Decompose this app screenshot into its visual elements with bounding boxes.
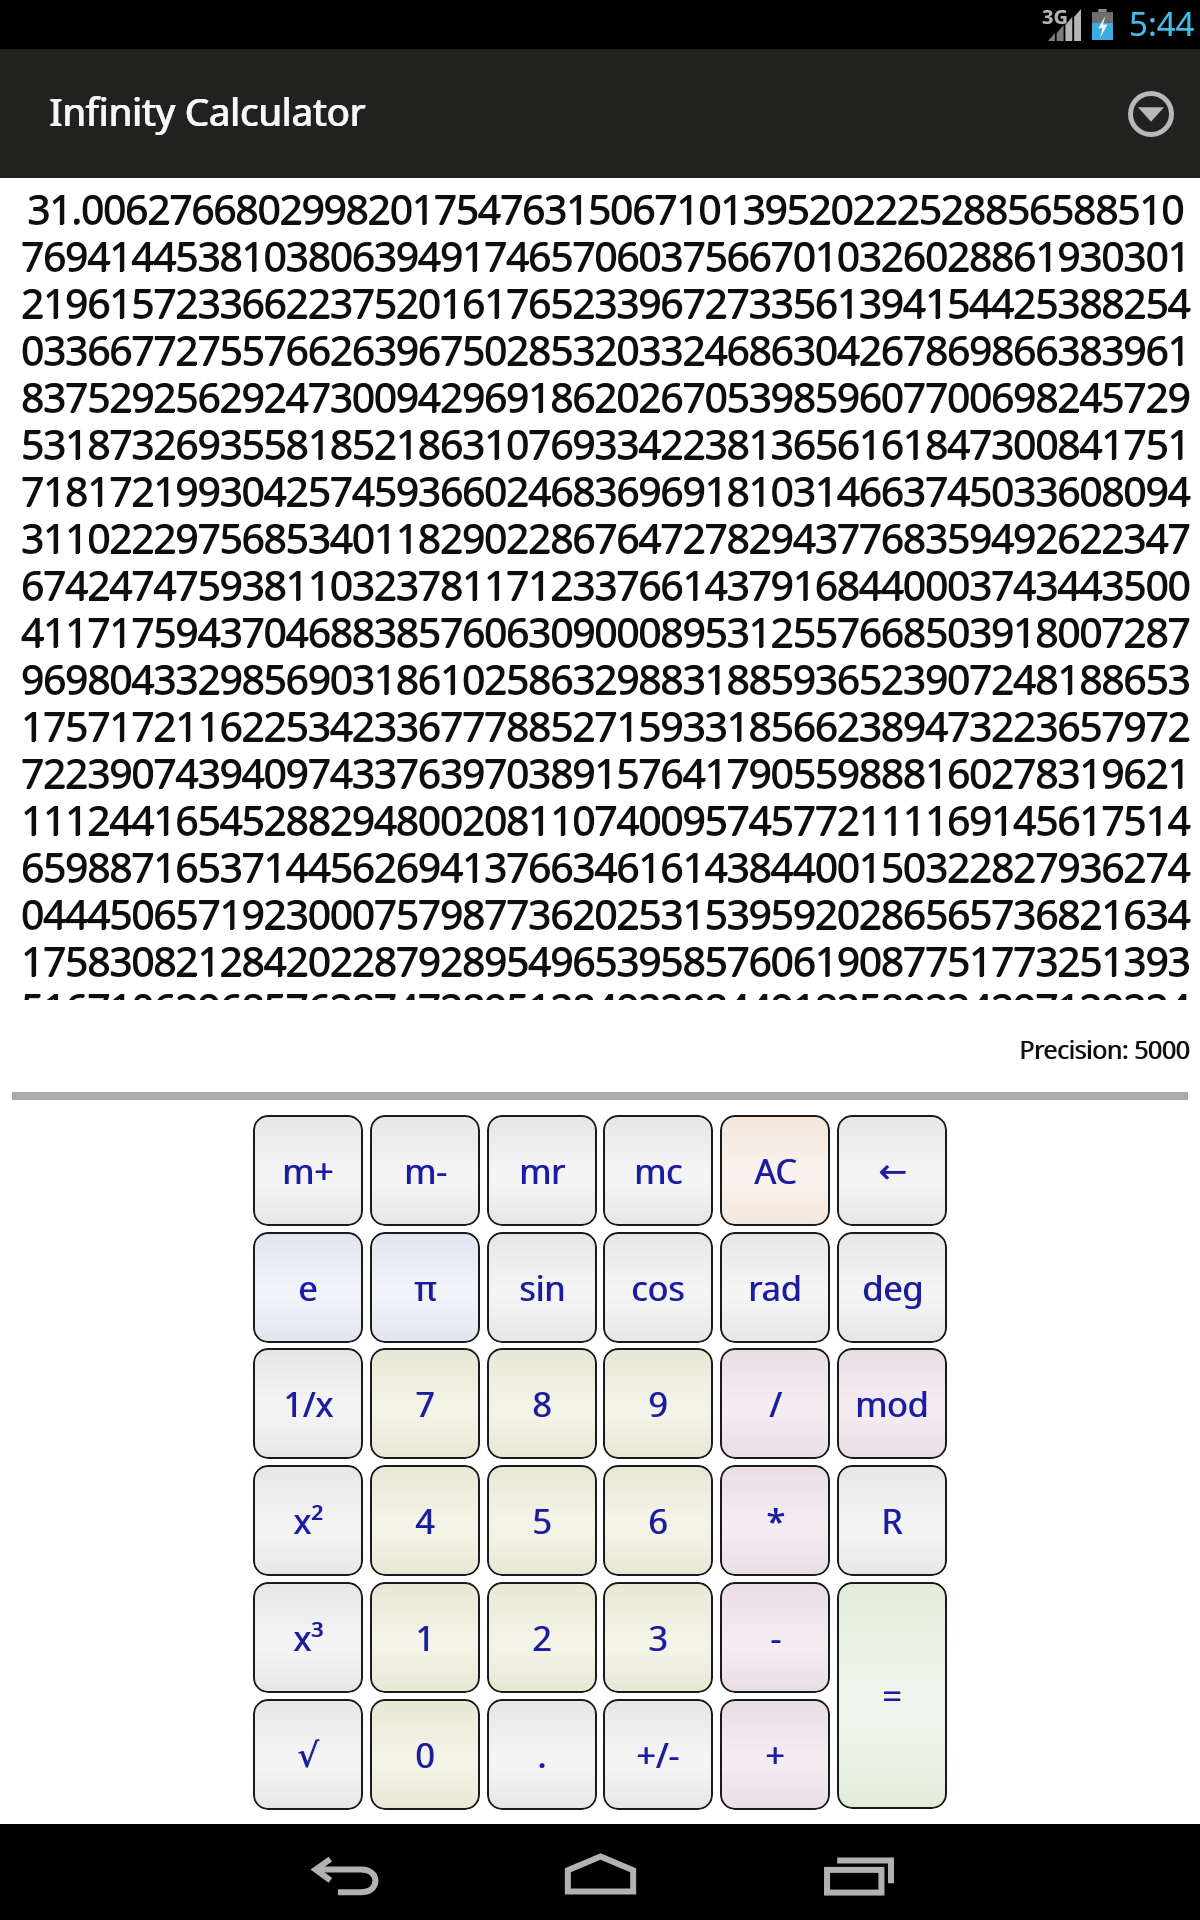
button[interactable]: Home bbox=[545, 1835, 655, 1913]
staticText: 31.0062766802998201754763150671013952022… bbox=[5, 187, 1200, 1000]
staticText: 8 bbox=[532, 1381, 552, 1427]
button[interactable]: 0 bbox=[370, 1699, 480, 1810]
staticText: = bbox=[883, 1673, 903, 1719]
button[interactable]: . bbox=[487, 1699, 597, 1810]
button[interactable]: 2 bbox=[487, 1582, 597, 1693]
staticText: R bbox=[881, 1498, 903, 1544]
button[interactable]: 7 bbox=[370, 1348, 480, 1459]
button[interactable]: Square root bbox=[253, 1699, 363, 1810]
staticText: mod bbox=[856, 1381, 930, 1427]
button[interactable]: - bbox=[720, 1582, 830, 1693]
staticText: +/- bbox=[636, 1732, 680, 1778]
staticText: sin bbox=[520, 1265, 567, 1311]
staticText: mr bbox=[520, 1148, 566, 1194]
button[interactable]: mod bbox=[837, 1348, 947, 1459]
staticText: 1 bbox=[416, 1615, 436, 1661]
button[interactable]: * bbox=[720, 1465, 830, 1576]
button[interactable]: 1 bbox=[370, 1582, 480, 1693]
staticText: 9 bbox=[648, 1381, 668, 1427]
staticText: m+ bbox=[282, 1148, 334, 1194]
staticText: 9 bbox=[649, 1381, 669, 1427]
staticText: 5:44 bbox=[1129, 1, 1195, 46]
staticText: R bbox=[882, 1498, 904, 1544]
staticText: x³ bbox=[293, 1615, 323, 1661]
button[interactable]: / bbox=[720, 1348, 830, 1459]
button[interactable]: Equals bbox=[837, 1582, 947, 1809]
staticText: 6 bbox=[648, 1498, 668, 1544]
staticText: 1/x bbox=[283, 1381, 334, 1427]
button[interactable]: deg bbox=[837, 1232, 947, 1343]
staticText: x² bbox=[293, 1498, 323, 1544]
staticText: 7 bbox=[416, 1381, 436, 1427]
button[interactable]: Backspace bbox=[837, 1115, 947, 1226]
staticText: m+ bbox=[283, 1148, 335, 1194]
button[interactable]: x² bbox=[253, 1465, 363, 1576]
staticText: 4 bbox=[415, 1498, 435, 1544]
staticText: + bbox=[765, 1732, 785, 1778]
staticText: 0 bbox=[416, 1732, 436, 1778]
staticText: mr bbox=[519, 1148, 565, 1194]
button[interactable]: cos bbox=[603, 1232, 713, 1343]
staticText: AC bbox=[754, 1148, 797, 1194]
button[interactable]: mc bbox=[603, 1115, 713, 1226]
button[interactable]: + bbox=[720, 1699, 830, 1810]
staticText: 31.0062766802998201754763150671013952022… bbox=[6, 187, 1200, 1000]
button[interactable]: Overflow menu bbox=[1117, 80, 1185, 148]
button[interactable]: e bbox=[253, 1232, 363, 1343]
staticText: 3G bbox=[1042, 3, 1068, 30]
staticText: 31.0062766802998201754763150671013952022… bbox=[5, 188, 1200, 1000]
button[interactable]: 9 bbox=[603, 1348, 713, 1459]
staticText: sin bbox=[519, 1265, 566, 1311]
staticText: AC bbox=[755, 1148, 798, 1194]
staticText: cos bbox=[632, 1265, 686, 1311]
staticText: 5 bbox=[533, 1498, 553, 1544]
staticText: mod bbox=[855, 1381, 929, 1427]
staticText: rad bbox=[748, 1265, 802, 1311]
staticText: 4 bbox=[416, 1498, 436, 1544]
button[interactable]: 6 bbox=[603, 1465, 713, 1576]
button[interactable]: Recent apps bbox=[804, 1837, 914, 1915]
button[interactable]: m- bbox=[370, 1115, 480, 1226]
staticText: 1 bbox=[415, 1615, 435, 1661]
button[interactable]: x³ bbox=[253, 1582, 363, 1693]
staticText: m- bbox=[405, 1148, 448, 1194]
staticText: +/- bbox=[637, 1732, 681, 1778]
staticText: Infinity Calculator bbox=[49, 85, 365, 137]
staticText: x³ bbox=[294, 1615, 324, 1661]
button[interactable]: 3 bbox=[603, 1582, 713, 1693]
button[interactable]: 4 bbox=[370, 1465, 480, 1576]
staticText: 6 bbox=[649, 1498, 669, 1544]
button[interactable]: Back bbox=[292, 1837, 402, 1915]
staticText: mc bbox=[634, 1148, 683, 1194]
staticText: 1/x bbox=[284, 1381, 335, 1427]
button[interactable]: 5 bbox=[487, 1465, 597, 1576]
staticText: mc bbox=[635, 1148, 684, 1194]
staticText: - bbox=[770, 1615, 781, 1661]
staticText: 0 bbox=[415, 1732, 435, 1778]
button[interactable]: AC bbox=[720, 1115, 830, 1226]
staticText: √ bbox=[298, 1735, 320, 1775]
staticText: rad bbox=[749, 1265, 803, 1311]
button[interactable]: m+ bbox=[253, 1115, 363, 1226]
staticText: cos bbox=[631, 1265, 685, 1311]
staticText: * bbox=[766, 1498, 785, 1544]
staticText: ← bbox=[878, 1151, 907, 1191]
staticText: m- bbox=[404, 1148, 447, 1194]
button[interactable]: mr bbox=[487, 1115, 597, 1226]
staticText: 5 bbox=[532, 1498, 552, 1544]
staticText: √ bbox=[297, 1735, 319, 1775]
staticText: 3 bbox=[648, 1615, 668, 1661]
staticText: Precision: 5000 bbox=[1019, 1032, 1190, 1066]
staticText: 8 bbox=[533, 1381, 553, 1427]
button[interactable]: 1/x bbox=[253, 1348, 363, 1459]
button[interactable]: R bbox=[837, 1465, 947, 1576]
staticText: * bbox=[767, 1498, 786, 1544]
button[interactable]: rad bbox=[720, 1232, 830, 1343]
button[interactable]: 8 bbox=[487, 1348, 597, 1459]
staticText: deg bbox=[862, 1265, 923, 1311]
button[interactable]: +/- bbox=[603, 1699, 713, 1810]
button[interactable]: sin bbox=[487, 1232, 597, 1343]
button[interactable]: Pi bbox=[370, 1232, 480, 1343]
staticText: ← bbox=[879, 1151, 908, 1191]
staticText: e bbox=[299, 1265, 319, 1311]
